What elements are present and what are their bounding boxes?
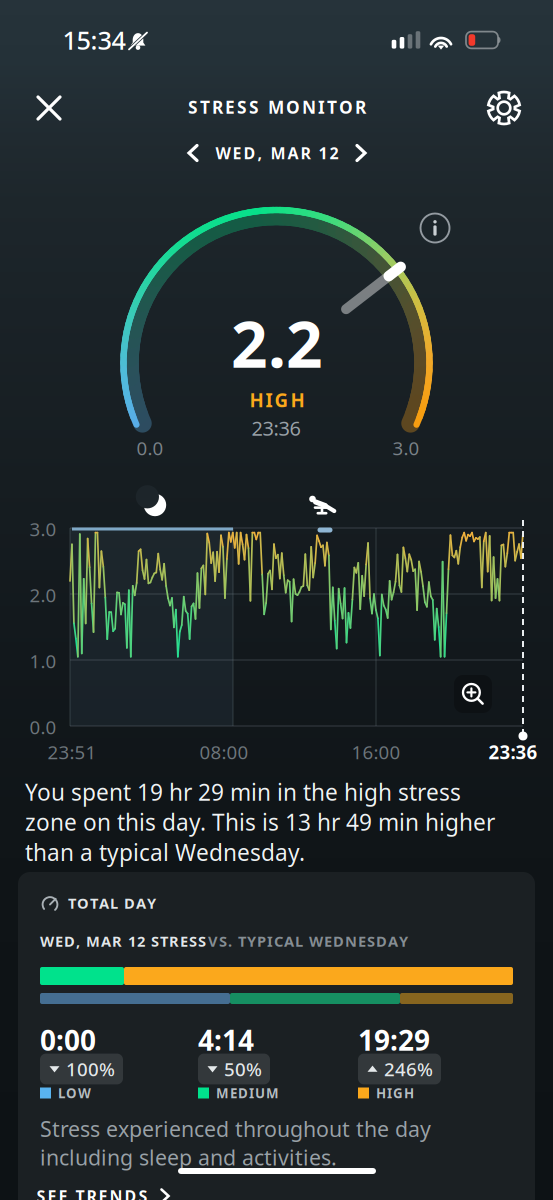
staticText: 23:36 xyxy=(251,415,300,441)
staticText: H I G H xyxy=(376,1084,414,1102)
staticText: W E D , M A R 1 2 S T R E S S xyxy=(40,931,206,951)
staticText: H I G H xyxy=(249,388,304,412)
staticText: W E D , M A R 1 2 xyxy=(215,142,338,164)
staticText: 15:34 xyxy=(62,23,125,57)
button[interactable]: S E E T R E N D S xyxy=(36,1185,175,1200)
staticText: 23:36 xyxy=(488,740,537,764)
staticText: You spent 19 hr 29 min in the high stres… xyxy=(25,777,495,867)
staticText: Stress experienced throughout the day in… xyxy=(40,1115,431,1171)
button[interactable]: Zoom in xyxy=(454,675,492,713)
staticText: 2.2 xyxy=(231,300,323,385)
staticText: 246% xyxy=(384,1057,433,1081)
button[interactable]: Next day xyxy=(344,136,378,170)
button[interactable]: About stress score xyxy=(416,209,454,247)
staticText: V S . T Y P I C A L W E D N E S D A Y xyxy=(208,931,408,951)
staticText: 0:00 xyxy=(40,1021,96,1059)
staticText: M E D I U M xyxy=(216,1084,279,1102)
staticText: 1.0 xyxy=(29,649,56,673)
staticText: 0.0 xyxy=(29,715,56,739)
staticText: T O T A L D A Y xyxy=(68,893,156,913)
staticText: L O W xyxy=(58,1084,91,1102)
staticText: 2.0 xyxy=(29,583,56,607)
button[interactable]: Settings xyxy=(483,87,525,129)
staticText: 19:29 xyxy=(358,1021,430,1059)
staticText: 50% xyxy=(224,1057,262,1081)
staticText: 100% xyxy=(66,1057,115,1081)
staticText: 16:00 xyxy=(351,740,400,764)
staticText: 4:14 xyxy=(198,1021,254,1059)
staticText: 0.0 xyxy=(136,436,163,460)
staticText: S T R E S S M O N I T O R xyxy=(188,95,366,118)
staticText: 3.0 xyxy=(29,517,56,541)
button[interactable]: Close xyxy=(27,86,71,130)
staticText: 3.0 xyxy=(392,436,419,460)
staticText: 08:00 xyxy=(199,740,248,764)
button[interactable]: Previous day xyxy=(176,136,210,170)
staticText: S E E T R E N D S xyxy=(36,1185,147,1200)
staticText: 23:51 xyxy=(47,740,96,764)
